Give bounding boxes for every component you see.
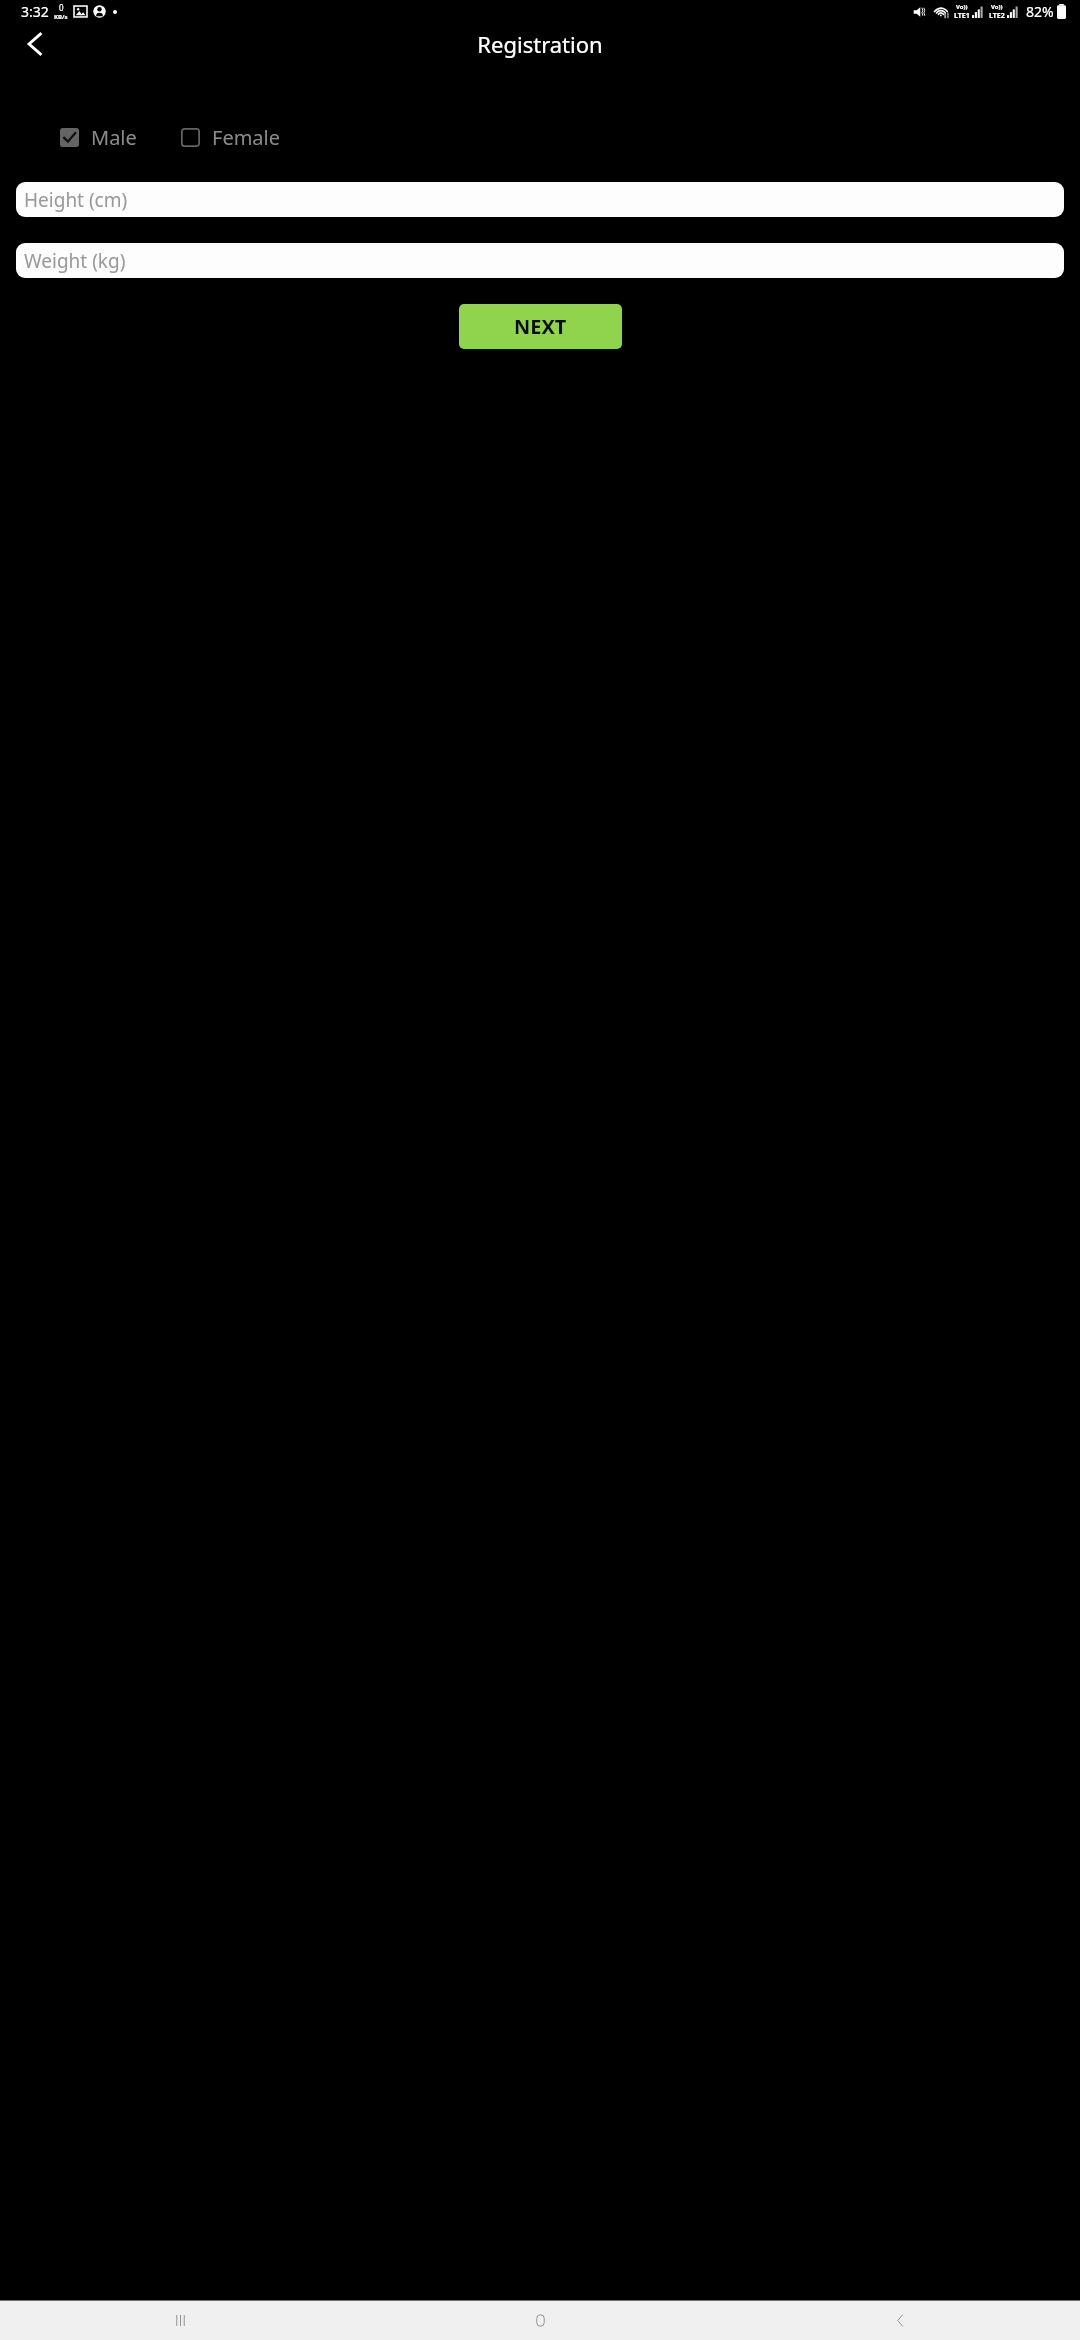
staticText: 0 bbox=[59, 2, 64, 13]
staticText: Male bbox=[91, 124, 137, 151]
staticText: Vo)) bbox=[991, 3, 1003, 11]
button[interactable]: Male bbox=[60, 124, 137, 151]
button[interactable]: Back bbox=[14, 24, 54, 64]
button[interactable]: Weight (kg) bbox=[16, 243, 1064, 278]
staticText: KB/s bbox=[54, 13, 68, 21]
button[interactable]: Female bbox=[181, 124, 281, 151]
button[interactable]: Recents bbox=[0, 2301, 360, 2340]
staticText: Female bbox=[212, 124, 281, 151]
staticText: Vo)) bbox=[956, 3, 968, 11]
button[interactable]: Home bbox=[360, 2301, 720, 2340]
staticText: 3:32 bbox=[21, 2, 49, 21]
staticText: Weight (kg) bbox=[24, 248, 126, 274]
staticText: NEXT bbox=[514, 313, 567, 340]
staticText: Height (cm) bbox=[24, 187, 128, 213]
button[interactable]: NEXT bbox=[459, 304, 622, 349]
staticText: LTE2 bbox=[989, 11, 1005, 21]
staticText: Registration bbox=[477, 29, 603, 59]
staticText: 82% bbox=[1026, 2, 1054, 21]
button[interactable]: Height (cm) bbox=[16, 182, 1064, 217]
staticText: LTE1 bbox=[954, 11, 970, 21]
